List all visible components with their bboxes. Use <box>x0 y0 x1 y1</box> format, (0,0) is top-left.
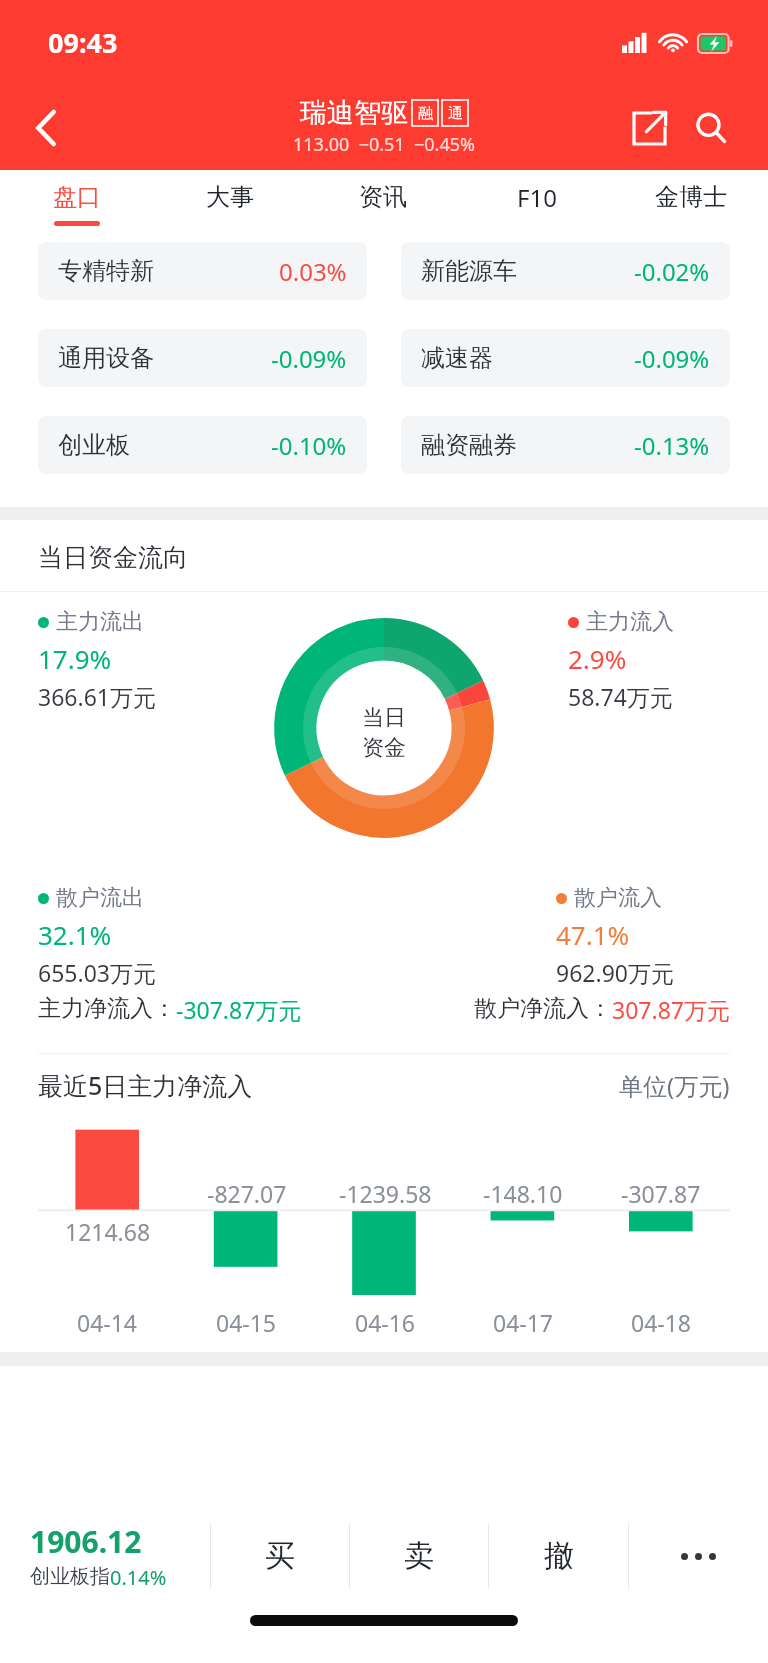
staticText: -827.07 <box>207 1178 287 1209</box>
staticText: -307.87 <box>621 1178 701 1209</box>
staticText: 366.61万元 <box>38 681 156 712</box>
staticText: 买 <box>265 1537 295 1575</box>
button[interactable]: 减速器 <box>401 329 730 387</box>
staticText: 卖 <box>404 1537 434 1575</box>
staticText: -0.10% <box>271 429 347 462</box>
button[interactable]: 创业板 <box>38 416 367 474</box>
staticText: 撤 <box>544 1537 574 1575</box>
staticText: 大事 <box>206 182 254 212</box>
staticText: 58.74万元 <box>568 681 673 712</box>
staticText: 通 <box>448 104 463 123</box>
staticText: 主力流入 <box>586 608 674 636</box>
staticText: 融 <box>418 104 433 123</box>
staticText: 04-18 <box>631 1307 692 1338</box>
staticText: 0.03% <box>279 255 347 288</box>
staticText: 当日资金流向 <box>38 542 188 573</box>
staticText: 1214.68 <box>65 1178 151 1209</box>
staticText: -0.02% <box>634 255 710 288</box>
staticText: 962.90万元 <box>556 957 674 988</box>
button[interactable]: 盘口 <box>0 170 153 232</box>
staticText: 655.03万元 <box>38 957 156 988</box>
button[interactable]: 大事 <box>153 170 306 232</box>
staticText: 04-14 <box>77 1307 138 1338</box>
staticText: 最近5日主力净流入 <box>38 1068 619 1102</box>
staticText: 04-16 <box>355 1307 416 1338</box>
staticText: -0.13% <box>634 429 710 462</box>
staticText: 散户净流入： <box>474 994 612 1023</box>
staticText: 1214.68 <box>65 1216 151 1247</box>
staticText: -148.10 <box>483 1178 563 1209</box>
staticText: 资讯 <box>359 182 407 212</box>
staticText: 2.9% <box>568 641 627 676</box>
staticText: 单位(万元) <box>619 1069 730 1102</box>
button[interactable]: More <box>629 1497 768 1615</box>
staticText: 当日 <box>362 704 406 732</box>
staticText: -307.87万元 <box>176 994 302 1025</box>
staticText: -0.09% <box>271 342 347 375</box>
button[interactable]: 专精特新 <box>38 242 367 300</box>
staticText: 创业板 <box>58 430 130 460</box>
button[interactable]: 买 <box>211 1497 349 1615</box>
staticText: 307.87万元 <box>612 994 730 1025</box>
button[interactable]: 资讯 <box>306 170 460 232</box>
staticText: 散户流出 <box>56 884 144 912</box>
staticText: -1239.58 <box>339 1178 432 1209</box>
staticText: 17.9% <box>38 641 112 676</box>
button[interactable]: Search <box>680 97 742 159</box>
staticText: 1906.12 <box>30 1521 142 1562</box>
staticText: 资金 <box>362 734 406 762</box>
staticText: 主力净流入： <box>38 994 176 1023</box>
staticText: 减速器 <box>421 343 493 373</box>
staticText: F10 <box>517 181 557 214</box>
staticText: 创业板指 <box>30 1564 110 1589</box>
staticText: 瑞迪智驱 <box>300 96 408 130</box>
staticText: -0.09% <box>634 342 710 375</box>
staticText: 113.00 −0.51 −0.45% <box>293 132 475 157</box>
button[interactable]: Share <box>618 97 680 159</box>
staticText: 金博士 <box>655 182 727 212</box>
staticText: 通用设备 <box>58 343 154 373</box>
staticText: 0.14% <box>110 1564 167 1591</box>
staticText: 32.1% <box>38 917 112 952</box>
staticText: 09:43 <box>48 24 118 61</box>
staticText: 盘口 <box>53 182 101 212</box>
staticText: 04-17 <box>493 1307 554 1338</box>
button[interactable]: 卖 <box>350 1497 488 1615</box>
staticText: 散户流入 <box>574 884 662 912</box>
staticText: 47.1% <box>556 917 630 952</box>
staticText: 主力流出 <box>56 608 144 636</box>
button[interactable]: F10 <box>460 170 614 232</box>
button[interactable]: 通用设备 <box>38 329 367 387</box>
button[interactable]: 撤 <box>489 1497 628 1615</box>
button[interactable]: 融资融券 <box>401 416 730 474</box>
button[interactable]: Back <box>0 85 92 170</box>
button[interactable]: 新能源车 <box>401 242 730 300</box>
staticText: 专精特新 <box>58 256 154 286</box>
staticText: 04-15 <box>216 1307 277 1338</box>
staticText: 新能源车 <box>421 256 517 286</box>
button[interactable]: 金博士 <box>614 170 768 232</box>
staticText: 融资融券 <box>421 430 517 460</box>
